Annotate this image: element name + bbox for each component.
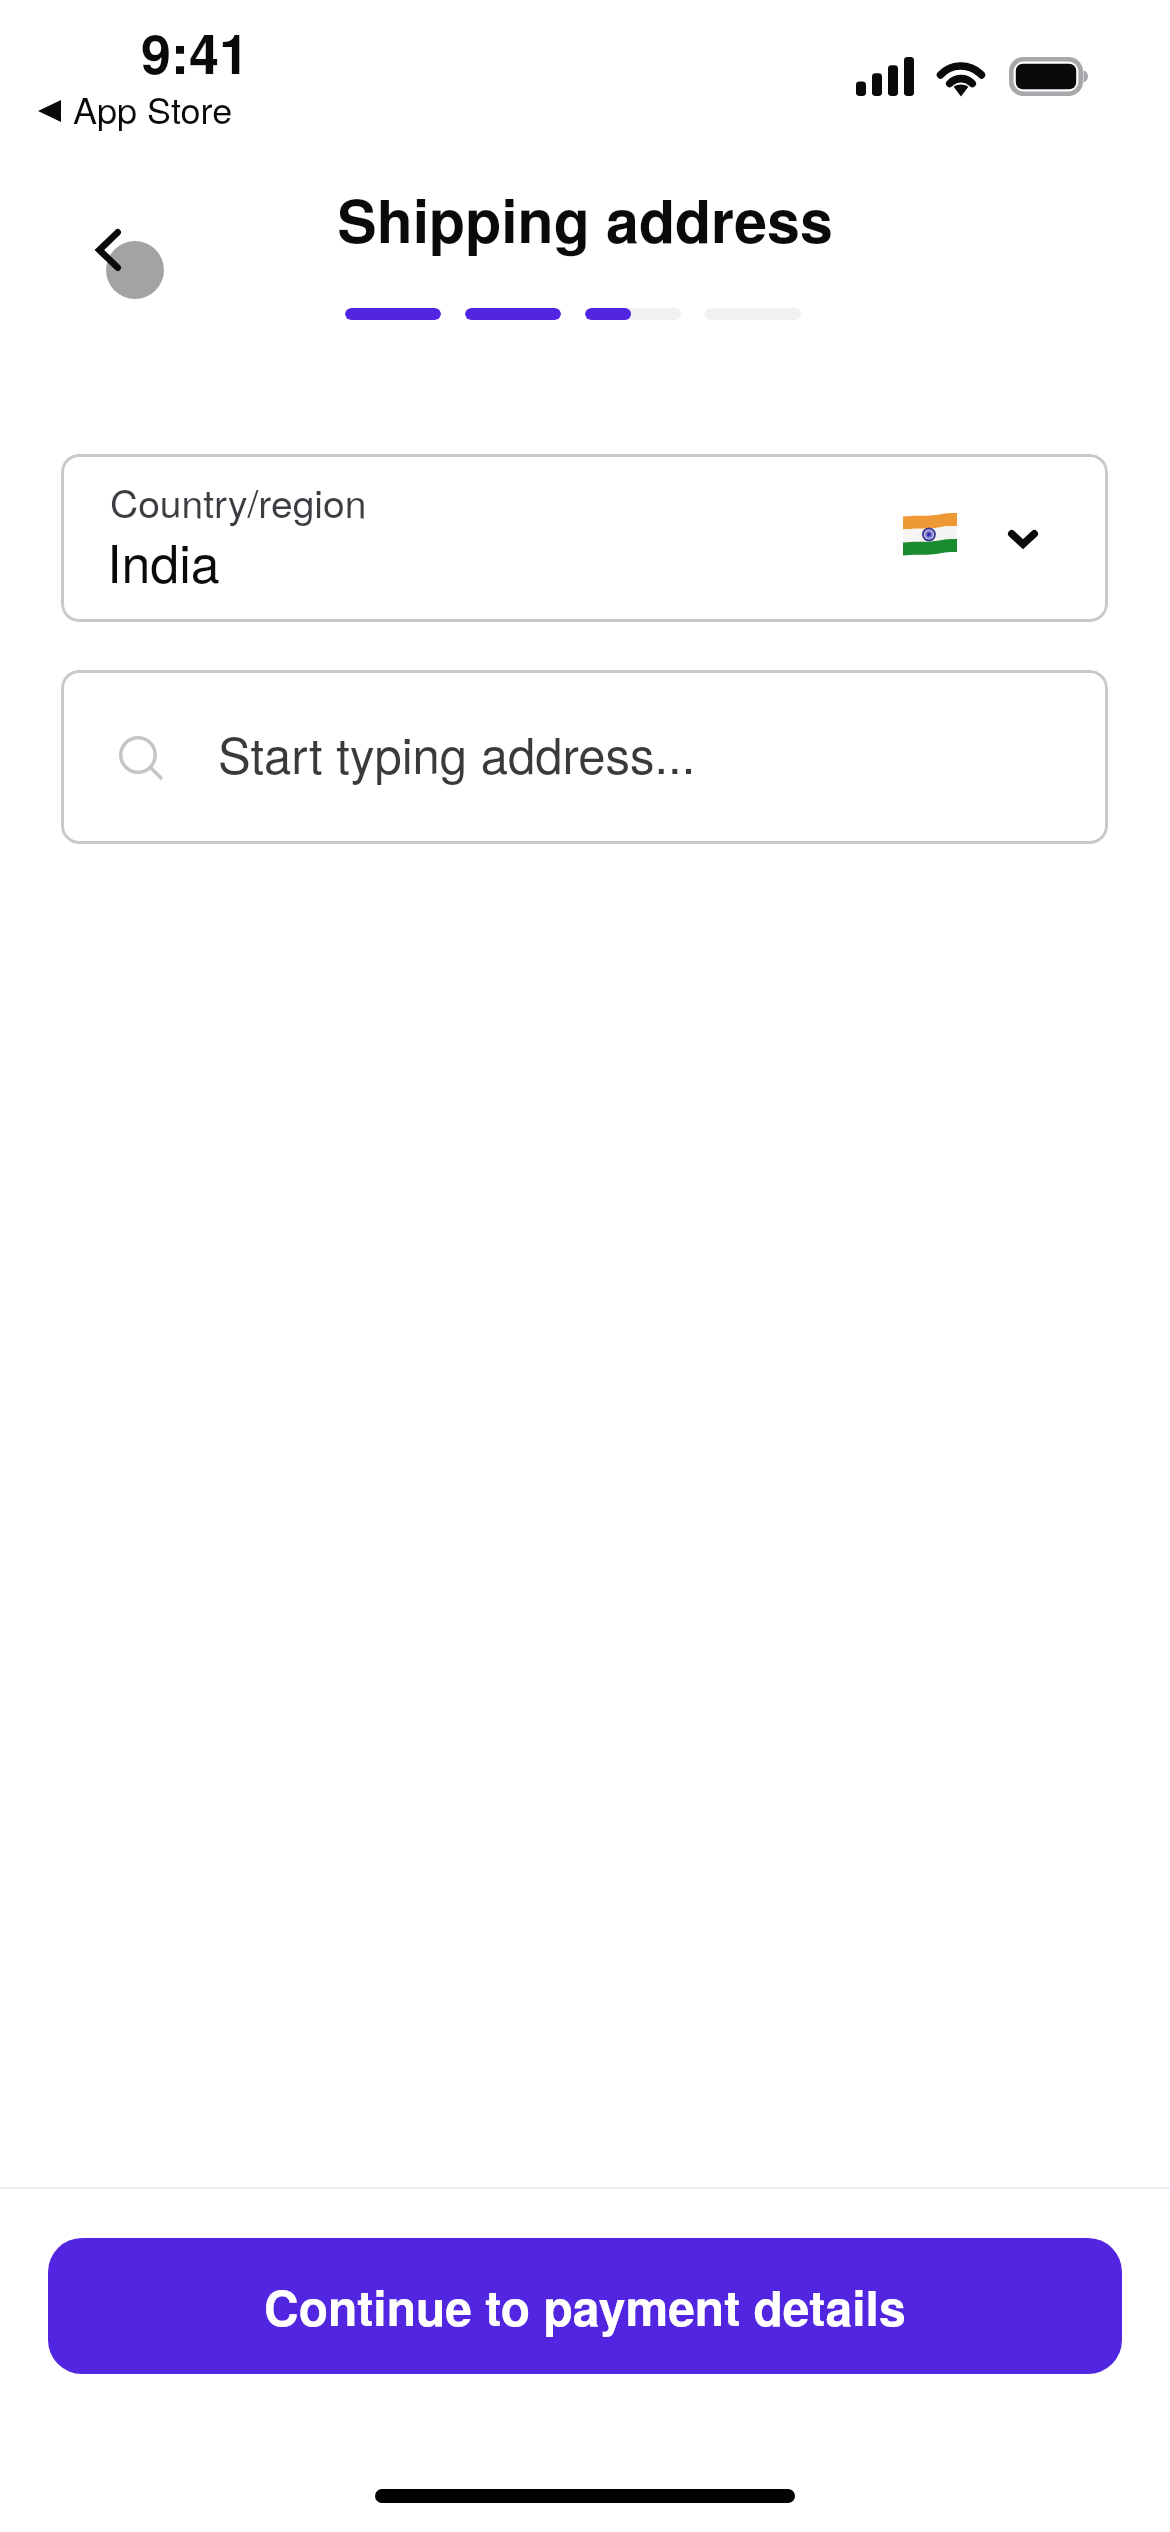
staticText: Country/region <box>110 473 367 529</box>
staticText: Shipping address <box>0 177 1170 261</box>
staticText: Start typing address... <box>218 718 696 788</box>
button[interactable]: Country/region <box>61 454 1108 622</box>
button[interactable]: Start typing address... <box>61 670 1108 844</box>
staticText: App Store <box>73 83 233 135</box>
staticText: Continue to payment details <box>264 2272 906 2341</box>
staticText: 9:41 <box>141 13 250 90</box>
staticText: India <box>107 523 220 597</box>
button[interactable]: App Store <box>38 85 233 137</box>
button[interactable]: Back <box>86 216 194 324</box>
button[interactable]: Continue to payment details <box>48 2238 1122 2374</box>
